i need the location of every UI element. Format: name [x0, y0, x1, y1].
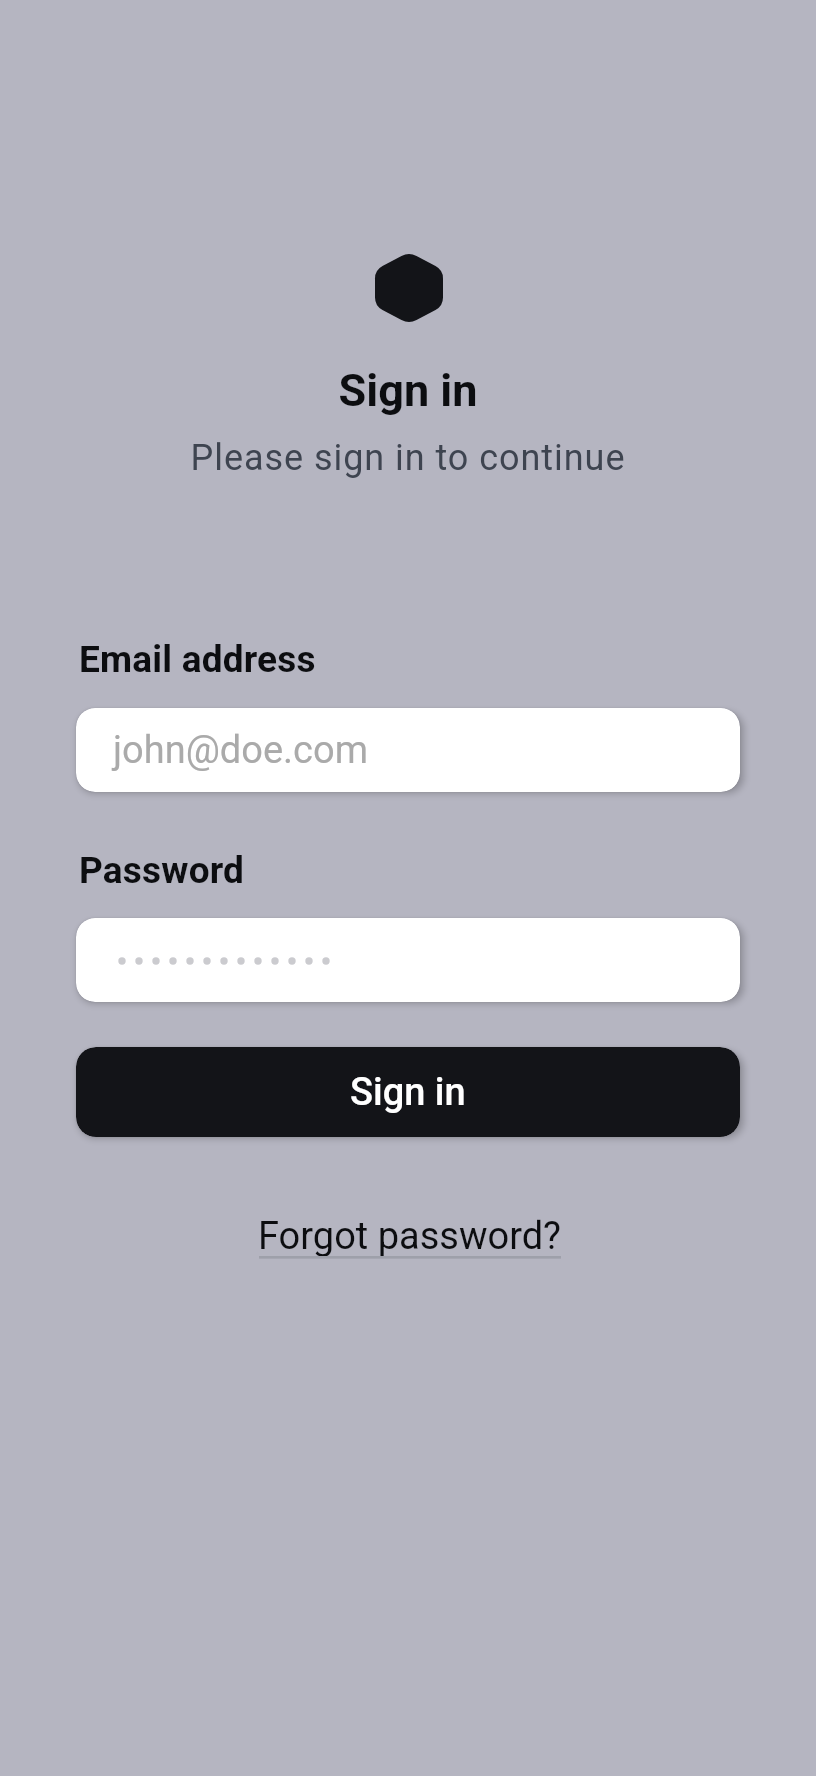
staticText: Password [79, 849, 245, 892]
other: App logo [375, 252, 443, 324]
staticText: Forgot password? [258, 1214, 562, 1259]
button[interactable]: Email address input [76, 708, 740, 792]
staticText: Sign in [350, 1070, 466, 1115]
staticText: Sign in [0, 364, 816, 417]
staticText: Please sign in to continue [0, 437, 816, 479]
button[interactable]: Forgot password? [257, 1205, 563, 1267]
button[interactable]: Password input [76, 918, 740, 1002]
staticText: john@doe.com [113, 728, 368, 773]
staticText: Email address [79, 638, 316, 681]
button[interactable]: Sign in [76, 1047, 740, 1137]
